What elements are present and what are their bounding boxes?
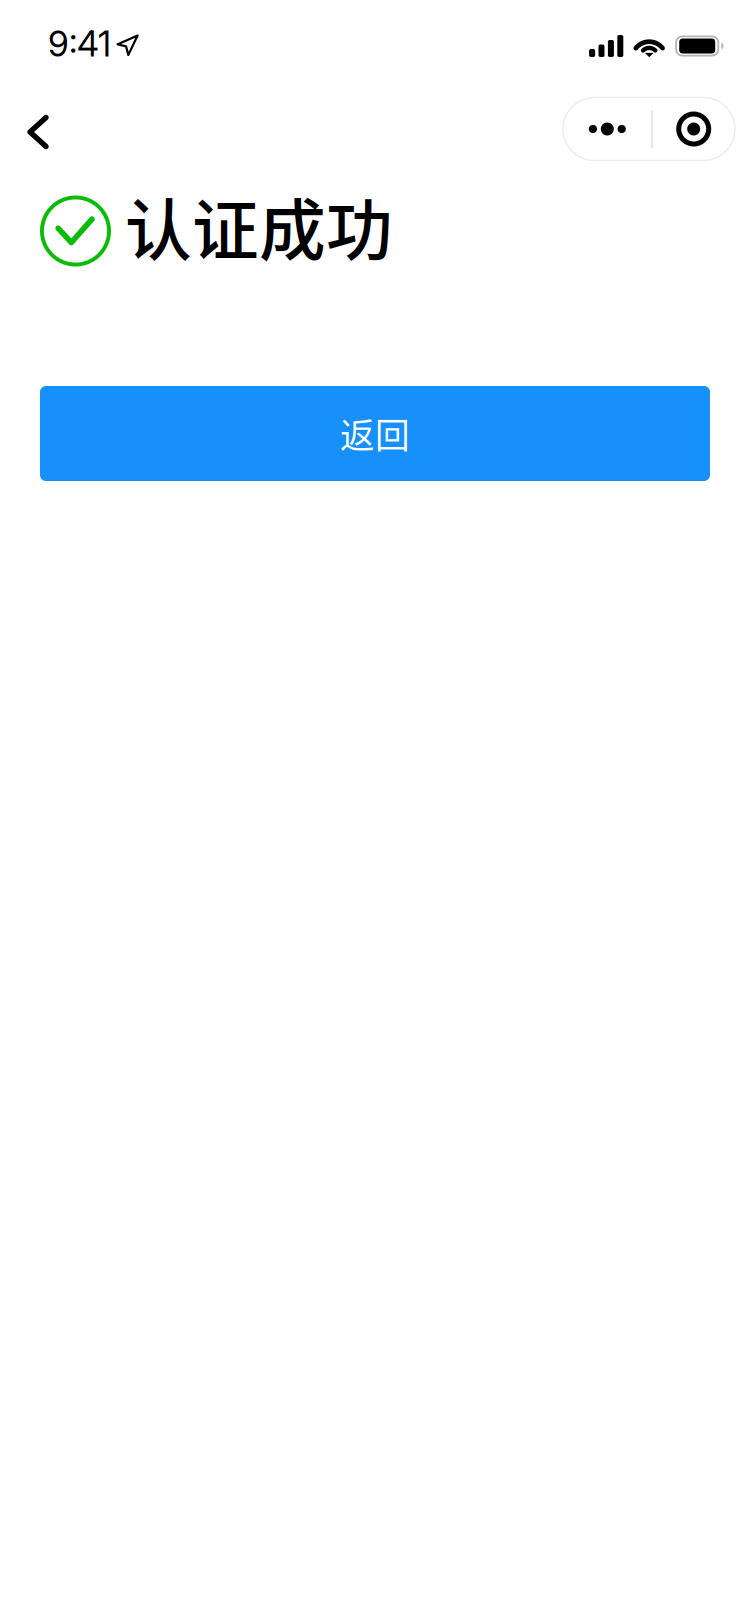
button[interactable]: 返回 (40, 386, 710, 481)
staticText: 9:41 (48, 23, 111, 65)
staticText: 认证成功 (125, 178, 393, 274)
staticText: 返回 (340, 408, 410, 459)
button[interactable]: Back (0, 93, 75, 164)
button[interactable]: More options (563, 98, 651, 159)
button[interactable]: Close mini program (653, 98, 735, 159)
